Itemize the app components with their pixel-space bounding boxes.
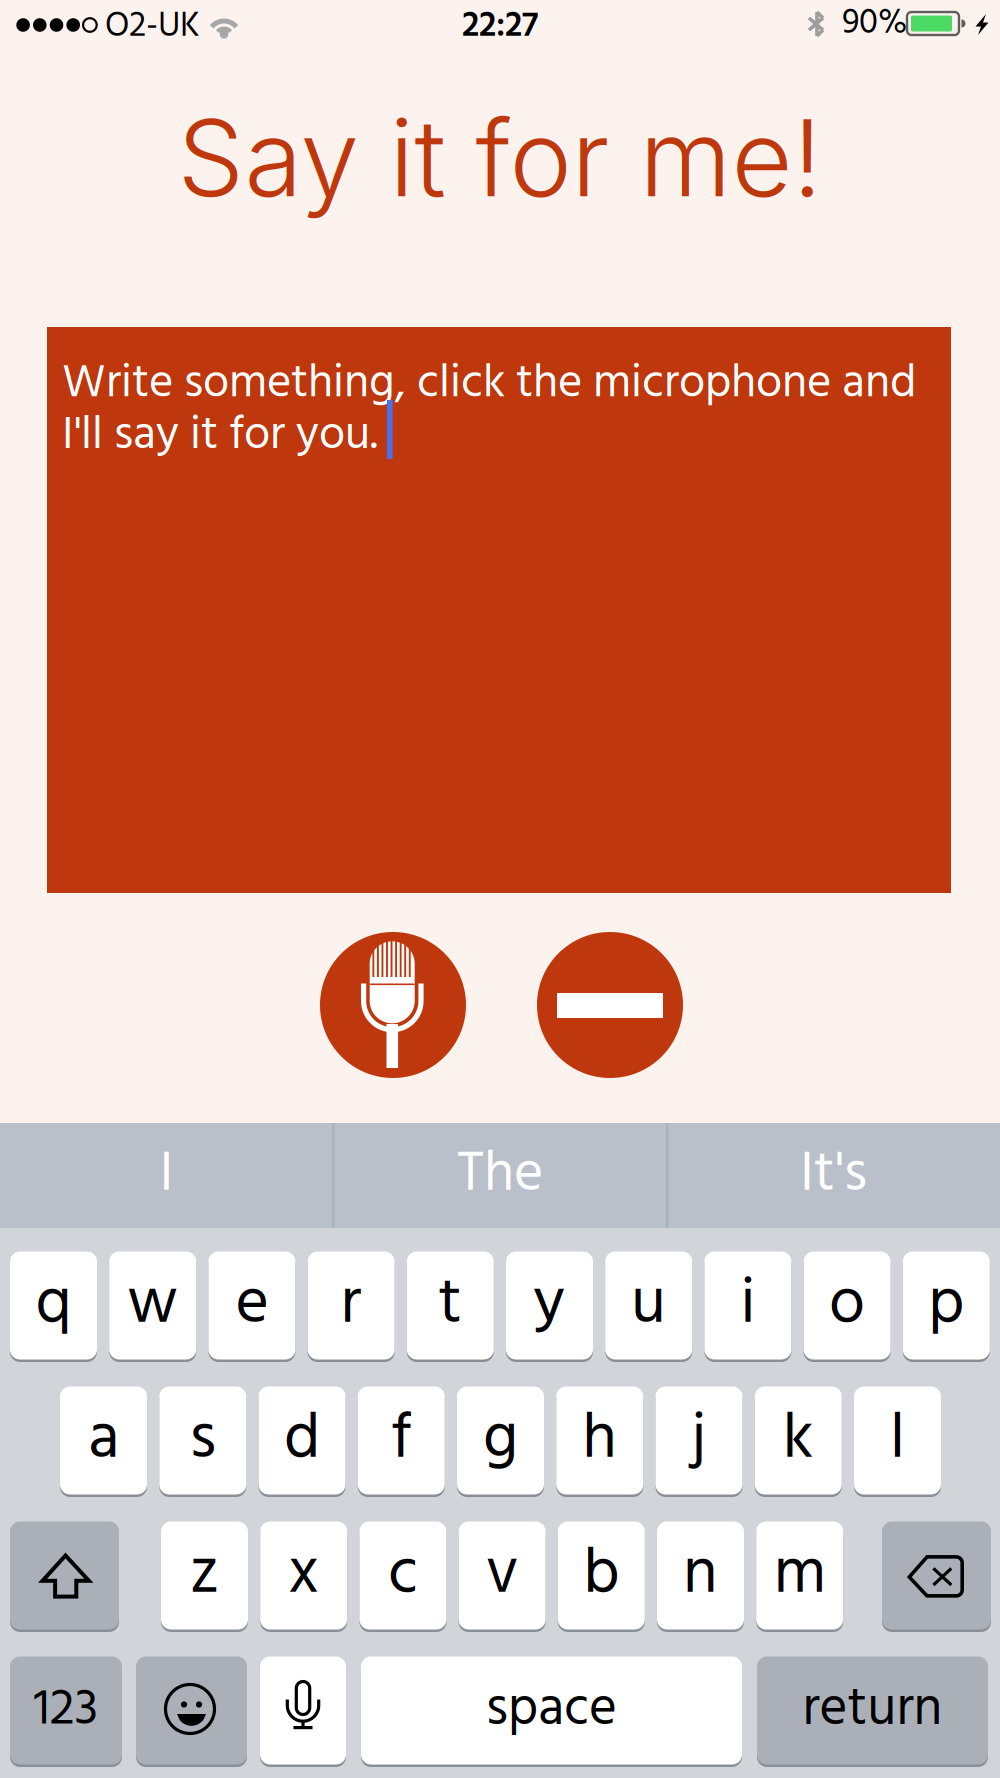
staticText: c: [388, 1524, 418, 1627]
button[interactable]: f: [358, 1385, 445, 1496]
button[interactable]: d: [258, 1385, 345, 1496]
button[interactable]: r: [308, 1250, 395, 1361]
button[interactable]: v: [459, 1520, 546, 1631]
button[interactable]: u: [605, 1250, 692, 1361]
button[interactable]: Speak: [320, 932, 466, 1078]
staticText: 22:27: [462, 0, 538, 55]
button[interactable]: Dictation: [260, 1655, 346, 1766]
staticText: o: [829, 1254, 865, 1357]
staticText: s: [190, 1389, 216, 1492]
button[interactable]: j: [655, 1385, 742, 1496]
staticText: O2-UK: [105, 0, 200, 55]
staticText: 123: [33, 1670, 98, 1751]
button[interactable]: o: [804, 1250, 891, 1361]
button[interactable]: c: [359, 1520, 446, 1631]
staticText: space: [486, 1668, 617, 1753]
staticText: u: [631, 1254, 666, 1357]
staticText: r: [341, 1254, 362, 1357]
button[interactable]: The: [333, 1123, 667, 1228]
staticText: x: [288, 1524, 319, 1627]
staticText: g: [483, 1389, 518, 1492]
button[interactable]: e: [208, 1250, 295, 1361]
staticText: d: [284, 1389, 320, 1492]
staticText: v: [486, 1524, 518, 1627]
button[interactable]: space: [361, 1655, 742, 1766]
button[interactable]: h: [556, 1385, 643, 1496]
staticText: z: [190, 1524, 219, 1627]
staticText: I: [159, 1131, 173, 1220]
staticText: p: [928, 1254, 964, 1357]
staticText: 90%: [842, 0, 907, 52]
staticText: Say it for me!: [177, 94, 822, 222]
staticText: Write something, click the microphone an…: [62, 347, 916, 473]
button[interactable]: a: [60, 1385, 147, 1496]
button[interactable]: t: [407, 1250, 494, 1361]
button[interactable]: Emoji: [136, 1655, 247, 1766]
staticText: m: [774, 1524, 826, 1627]
button[interactable]: I: [0, 1123, 333, 1228]
button[interactable]: y: [506, 1250, 593, 1361]
staticText: a: [88, 1389, 119, 1492]
staticText: e: [235, 1254, 268, 1357]
staticText: k: [783, 1389, 814, 1492]
button[interactable]: 123: [10, 1655, 122, 1766]
staticText: It's: [800, 1131, 867, 1220]
button[interactable]: Shift: [10, 1520, 119, 1631]
staticText: The: [457, 1131, 543, 1220]
button[interactable]: b: [558, 1520, 645, 1631]
button[interactable]: z: [161, 1520, 248, 1631]
button[interactable]: return: [757, 1655, 988, 1766]
button[interactable]: k: [755, 1385, 842, 1496]
button[interactable]: x: [260, 1520, 347, 1631]
staticText: j: [691, 1389, 706, 1492]
staticText: b: [583, 1524, 619, 1627]
staticText: w: [127, 1254, 178, 1357]
button[interactable]: q: [10, 1250, 97, 1361]
button[interactable]: g: [457, 1385, 544, 1496]
button[interactable]: m: [756, 1520, 843, 1631]
staticText: n: [683, 1524, 718, 1627]
staticText: return: [802, 1668, 942, 1753]
button[interactable]: l: [854, 1385, 941, 1496]
staticText: y: [533, 1254, 565, 1357]
staticText: h: [582, 1389, 617, 1492]
button[interactable]: n: [657, 1520, 744, 1631]
button[interactable]: s: [159, 1385, 246, 1496]
staticText: f: [391, 1389, 412, 1492]
button[interactable]: Stop: [537, 932, 683, 1078]
staticText: l: [890, 1389, 905, 1492]
button[interactable]: w: [109, 1250, 196, 1361]
button[interactable]: Delete: [882, 1520, 991, 1631]
staticText: t: [438, 1254, 462, 1357]
button[interactable]: p: [903, 1250, 990, 1361]
button[interactable]: It's: [667, 1123, 1000, 1228]
button[interactable]: i: [704, 1250, 791, 1361]
staticText: q: [35, 1254, 71, 1357]
staticText: i: [740, 1254, 755, 1357]
